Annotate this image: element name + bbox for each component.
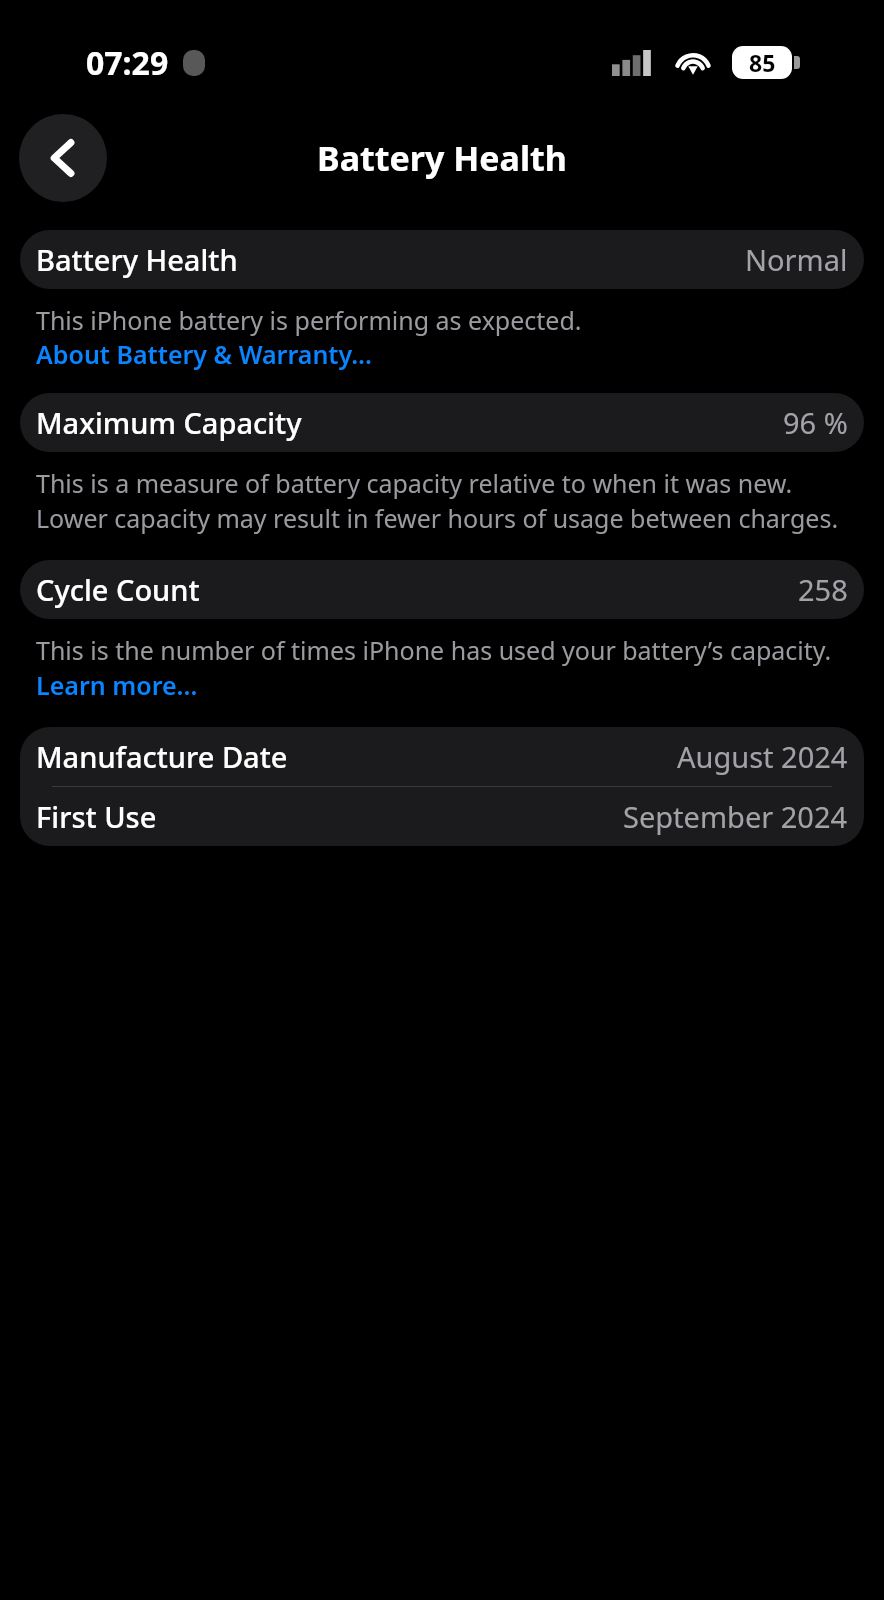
staticText: September 2024 bbox=[623, 797, 848, 836]
staticText: Battery Health bbox=[317, 135, 567, 181]
staticText: August 2024 bbox=[677, 737, 848, 776]
staticText: 85 bbox=[749, 47, 776, 78]
staticText: Battery Health bbox=[36, 240, 238, 279]
staticText: 07:29 bbox=[86, 41, 169, 85]
button[interactable]: Maximum Capacity bbox=[20, 393, 864, 452]
staticText: This iPhone battery is performing as exp… bbox=[36, 303, 582, 337]
button[interactable]: Battery Health bbox=[20, 230, 864, 289]
staticText: Manufacture Date bbox=[36, 737, 288, 776]
staticText: Cycle Count bbox=[36, 570, 200, 609]
staticText: 258 bbox=[798, 570, 848, 609]
button[interactable]: Back bbox=[19, 114, 107, 202]
button[interactable]: First Use bbox=[20, 787, 864, 846]
button[interactable]: Cycle Count bbox=[20, 560, 864, 619]
staticText: Maximum Capacity bbox=[36, 403, 302, 442]
button[interactable]: About Battery & Warranty... bbox=[36, 337, 372, 371]
staticText: First Use bbox=[36, 797, 157, 836]
button[interactable]: Manufacture Date bbox=[20, 727, 864, 786]
staticText: This is the number of times iPhone has u… bbox=[36, 633, 848, 703]
staticText: Normal bbox=[745, 240, 848, 279]
staticText: This is a measure of battery capacity re… bbox=[36, 466, 848, 536]
staticText: 96 % bbox=[783, 403, 848, 442]
